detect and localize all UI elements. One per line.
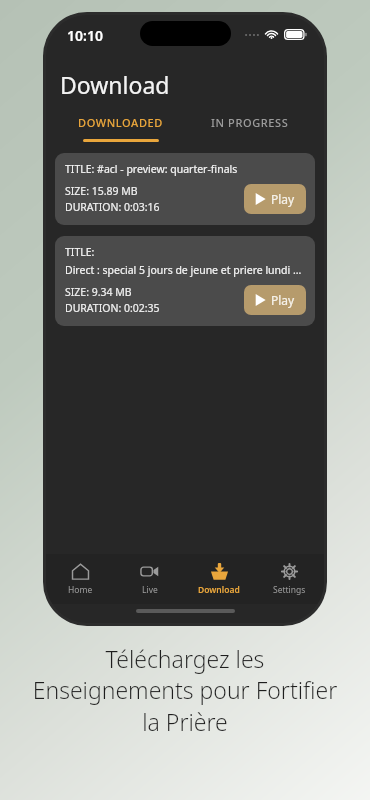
- staticText: TITLE: #acl - preview: quarter-finals: [65, 162, 238, 176]
- staticText: DOWNLOADED: [78, 115, 163, 130]
- button[interactable]: Play: [244, 285, 306, 315]
- button[interactable]: TITLE: #acl - preview: quarter-finals: [55, 153, 315, 225]
- staticText: Téléchargez les Enseignements pour Forti…: [26, 643, 344, 738]
- staticText: Home: [68, 584, 93, 596]
- button[interactable]: Download: [184, 554, 254, 604]
- staticText: SIZE: 9.34 MB: [65, 285, 132, 299]
- staticText: TITLE:: [65, 245, 95, 259]
- staticText: DURATION: 0:02:35: [65, 301, 160, 315]
- button[interactable]: Home: [46, 554, 115, 604]
- staticText: Live: [142, 584, 158, 596]
- staticText: DURATION: 0:03:16: [65, 200, 160, 214]
- staticText: Play: [271, 191, 295, 207]
- staticText: IN PROGRESS: [211, 115, 289, 130]
- staticText: Direct : special 5 jours de jeune et pri…: [65, 263, 306, 277]
- staticText: Play: [271, 292, 295, 308]
- staticText: SIZE: 15.89 MB: [65, 184, 138, 198]
- button[interactable]: Play: [244, 184, 306, 214]
- button[interactable]: IN PROGRESS: [185, 115, 314, 130]
- button[interactable]: Live: [115, 554, 184, 604]
- button[interactable]: Settings: [254, 554, 324, 604]
- staticText: Settings: [273, 584, 306, 596]
- button[interactable]: TITLE:: [55, 236, 315, 326]
- button[interactable]: DOWNLOADED: [56, 115, 185, 142]
- staticText: 10:10: [67, 26, 103, 45]
- staticText: Download: [60, 69, 170, 100]
- staticText: Download: [198, 584, 240, 596]
